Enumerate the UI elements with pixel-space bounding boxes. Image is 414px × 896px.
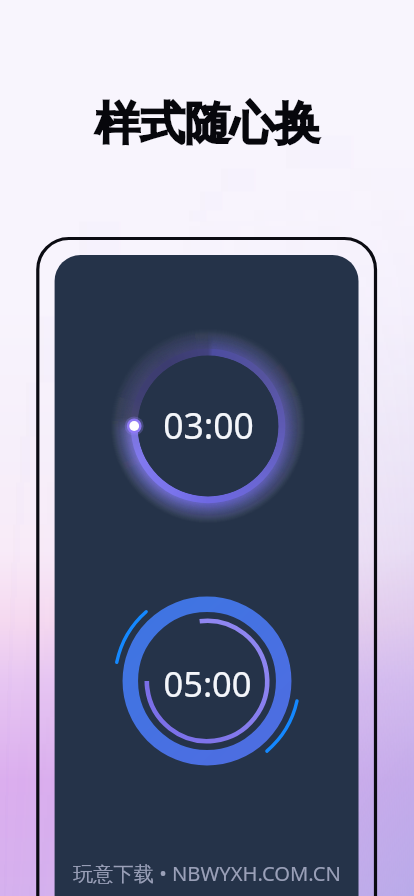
staticText: 样式随心换 xyxy=(95,96,320,153)
button[interactable]: Timer 05:00 xyxy=(107,581,307,781)
staticText: 05:00 xyxy=(163,660,252,707)
staticText: 玩意下载 • NBWYXH.COM.CN xyxy=(73,859,341,887)
button[interactable]: Timer 03:00 xyxy=(108,326,308,526)
staticText: 03:00 xyxy=(163,401,254,449)
